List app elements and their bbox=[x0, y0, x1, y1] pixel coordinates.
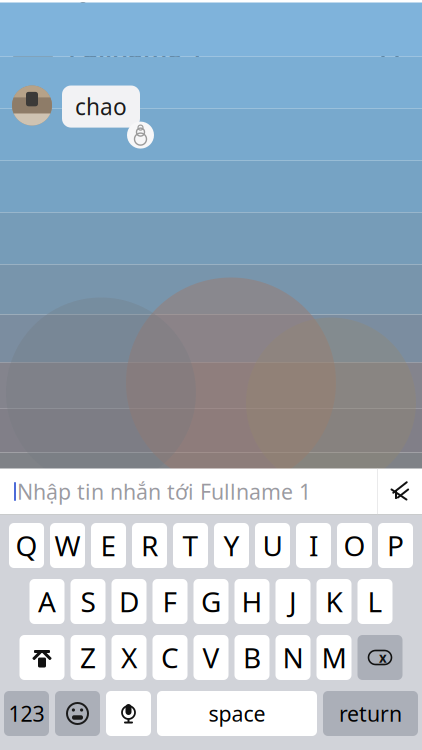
button[interactable]: G bbox=[193, 579, 228, 624]
button[interactable]: B bbox=[234, 635, 269, 680]
staticText: Z bbox=[80, 639, 96, 676]
button[interactable]: R bbox=[132, 523, 167, 568]
staticText: N bbox=[282, 639, 303, 676]
button[interactable]: N bbox=[275, 635, 310, 680]
button[interactable]: Dictate bbox=[106, 691, 151, 736]
staticText: Q bbox=[15, 527, 37, 564]
button[interactable]: M bbox=[316, 635, 351, 680]
staticText: J bbox=[289, 583, 297, 620]
staticText: D bbox=[119, 583, 139, 620]
staticText: H bbox=[241, 583, 262, 620]
staticText: T bbox=[182, 527, 198, 564]
button[interactable]: D bbox=[111, 579, 146, 624]
button[interactable]: Emoji bbox=[55, 691, 100, 736]
staticText: Y bbox=[223, 527, 239, 564]
staticText: C bbox=[161, 639, 179, 676]
button[interactable]: Fullname 1 bbox=[0, 28, 203, 70]
button[interactable]: U bbox=[255, 523, 290, 568]
button[interactable]: H bbox=[234, 579, 269, 624]
button[interactable]: Send bbox=[378, 468, 422, 514]
button[interactable]: I bbox=[296, 523, 331, 568]
button[interactable]: J bbox=[275, 579, 310, 624]
button[interactable]: C bbox=[152, 635, 187, 680]
button[interactable]: F bbox=[152, 579, 187, 624]
button[interactable]: 123 bbox=[4, 691, 49, 736]
staticText: M bbox=[321, 639, 346, 676]
button[interactable]: K bbox=[316, 579, 351, 624]
button[interactable]: Close bbox=[368, 27, 412, 71]
staticText: I bbox=[309, 527, 318, 564]
staticText: B bbox=[243, 639, 261, 676]
staticText: Nhập tin nhắn tới Fullname 1 bbox=[17, 477, 311, 506]
staticText: 123 bbox=[8, 699, 44, 728]
button[interactable]: W bbox=[50, 523, 85, 568]
staticText: 1:47 PM bbox=[202, 0, 269, 22]
button[interactable]: T bbox=[173, 523, 208, 568]
button[interactable]: Q bbox=[9, 523, 44, 568]
staticText: A bbox=[38, 583, 56, 620]
button[interactable]: X bbox=[111, 635, 146, 680]
button[interactable]: space bbox=[157, 691, 317, 736]
staticText: O bbox=[343, 527, 365, 564]
staticText: V bbox=[202, 639, 219, 676]
staticText: space bbox=[208, 699, 265, 728]
button[interactable]: Shift bbox=[19, 635, 64, 680]
staticText: F bbox=[162, 583, 177, 620]
button[interactable]: V bbox=[193, 635, 228, 680]
staticText: G bbox=[201, 583, 221, 620]
staticText: R bbox=[141, 527, 158, 564]
button[interactable]: O bbox=[337, 523, 372, 568]
staticText: W bbox=[54, 527, 80, 564]
button[interactable]: A bbox=[29, 579, 64, 624]
button[interactable]: L bbox=[357, 579, 392, 624]
staticText: U bbox=[262, 527, 282, 564]
button[interactable]: Delete bbox=[357, 635, 402, 680]
staticText: K bbox=[325, 583, 342, 620]
staticText: Fullname 1 bbox=[68, 32, 203, 66]
staticText: X bbox=[121, 639, 137, 676]
button[interactable]: S bbox=[70, 579, 105, 624]
staticText: chao bbox=[75, 91, 127, 122]
button[interactable]: Y bbox=[214, 523, 249, 568]
button[interactable]: return bbox=[323, 691, 418, 736]
staticText: P bbox=[387, 527, 404, 564]
button[interactable]: E bbox=[91, 523, 126, 568]
staticText: E bbox=[100, 527, 116, 564]
button[interactable]: Z bbox=[70, 635, 105, 680]
staticText: x bbox=[379, 649, 387, 666]
staticText: S bbox=[80, 583, 95, 620]
button[interactable]: P bbox=[378, 523, 413, 568]
staticText: Carrier bbox=[14, 0, 70, 22]
staticText: return bbox=[339, 699, 402, 728]
staticText: L bbox=[367, 583, 382, 620]
